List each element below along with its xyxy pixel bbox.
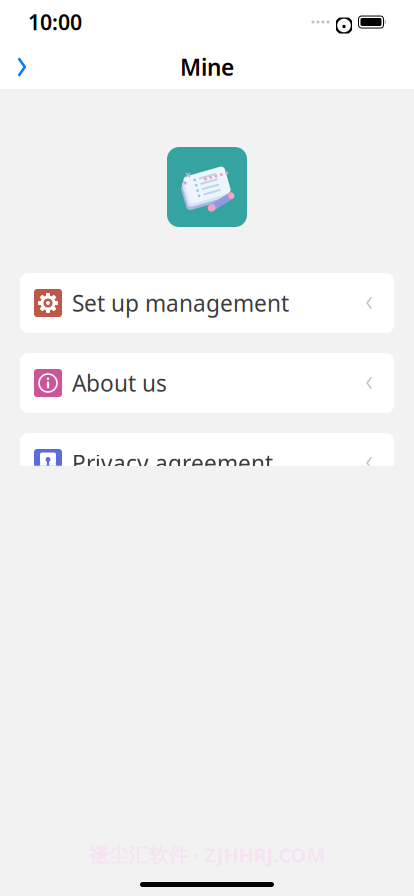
staticText: About us bbox=[72, 368, 167, 398]
staticText: 10:00 bbox=[28, 8, 82, 36]
staticText: Mine bbox=[180, 52, 234, 82]
staticText: 褪尘汇软件 · ZJHHRJ.COM bbox=[88, 841, 325, 868]
staticText: Privacy agreement bbox=[72, 448, 273, 478]
staticText: Set up management bbox=[72, 288, 289, 318]
button[interactable]: Set up management bbox=[20, 273, 394, 333]
button[interactable]: Privacy agreement bbox=[20, 433, 394, 493]
button[interactable]: About us bbox=[20, 353, 394, 413]
button[interactable]: Back bbox=[0, 45, 44, 89]
